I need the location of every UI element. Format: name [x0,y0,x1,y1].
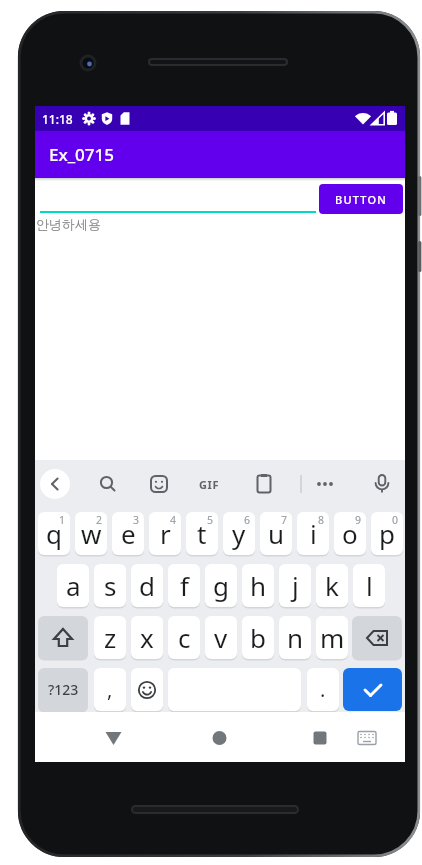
button[interactable]: c [168,616,200,659]
staticText: e [121,516,136,551]
staticText: Ex_0715 [49,143,114,166]
button[interactable] [347,718,387,758]
button[interactable] [343,668,402,711]
button[interactable] [143,468,175,500]
staticText: 1 [59,513,66,527]
staticText: 5 [207,513,214,527]
button[interactable]: ?123 [38,668,88,711]
button[interactable]: h [242,564,274,607]
staticText: ?123 [48,680,79,699]
staticText: m [320,620,345,655]
button[interactable]: e [112,512,144,555]
button[interactable]: o [334,512,366,555]
staticText: k [325,568,339,603]
button[interactable]: g [205,564,237,607]
staticText: 2 [96,513,103,527]
staticText: f [180,568,189,603]
button[interactable] [39,468,71,500]
button[interactable]: d [131,564,163,607]
button[interactable]: w [75,512,107,555]
staticText: s [104,568,117,603]
staticText: b [250,620,266,655]
staticText: 0 [392,513,399,527]
button[interactable] [300,718,340,758]
button[interactable] [131,668,163,711]
button[interactable]: j [279,564,311,607]
button[interactable]: BUTTON [319,184,403,214]
staticText: r [160,516,171,551]
staticText: 안녕하세용 [36,216,101,232]
button[interactable]: y [223,512,255,555]
button[interactable] [92,468,124,500]
button[interactable] [38,616,88,659]
staticText: BUTTON [335,192,388,207]
staticText: , [107,676,113,703]
button[interactable]: f [168,564,200,607]
button[interactable]: r [149,512,181,555]
button[interactable]: i [297,512,329,555]
staticText: 7 [281,513,288,527]
button[interactable]: b [242,616,274,659]
staticText: j [292,568,299,603]
staticText: d [139,568,155,603]
staticText: c [178,620,191,655]
staticText: p [379,516,395,551]
button[interactable] [352,616,402,659]
staticText: y [232,516,246,551]
staticText: 9 [355,513,362,527]
staticText: t [197,516,207,551]
staticText: v [214,620,228,655]
staticText: o [342,516,358,551]
staticText: l [366,568,373,603]
staticText: 4 [170,513,177,527]
button[interactable]: n [279,616,311,659]
staticText: a [66,568,81,603]
button[interactable]: t [186,512,218,555]
button[interactable]: a [57,564,89,607]
button[interactable]: z [94,616,126,659]
button[interactable] [195,468,227,500]
button[interactable]: k [316,564,348,607]
staticText: 3 [133,513,140,527]
button[interactable]: v [205,616,237,659]
button[interactable]: , [94,668,126,711]
staticText: . [320,676,326,703]
button[interactable] [309,468,341,500]
staticText: i [310,516,317,551]
staticText: u [268,516,285,551]
button[interactable]: q [38,512,70,555]
button[interactable]: l [353,564,385,607]
staticText: 8 [318,513,325,527]
button[interactable]: x [131,616,163,659]
staticText: h [250,568,267,603]
button[interactable]: . [307,668,339,711]
button[interactable]: p [371,512,403,555]
staticText: x [140,620,154,655]
button[interactable] [366,468,398,500]
staticText: n [287,620,304,655]
button[interactable]: m [316,616,348,659]
staticText: w [81,516,102,551]
button[interactable] [248,468,280,500]
staticText: 11:18 [42,111,73,127]
button[interactable] [199,718,239,758]
staticText: 6 [244,513,251,527]
staticText: g [213,568,229,603]
staticText: GIF [199,477,220,492]
staticText: q [46,516,62,551]
button[interactable] [93,718,133,758]
button[interactable]: s [94,564,126,607]
button[interactable]: u [260,512,292,555]
staticText: z [104,620,117,655]
